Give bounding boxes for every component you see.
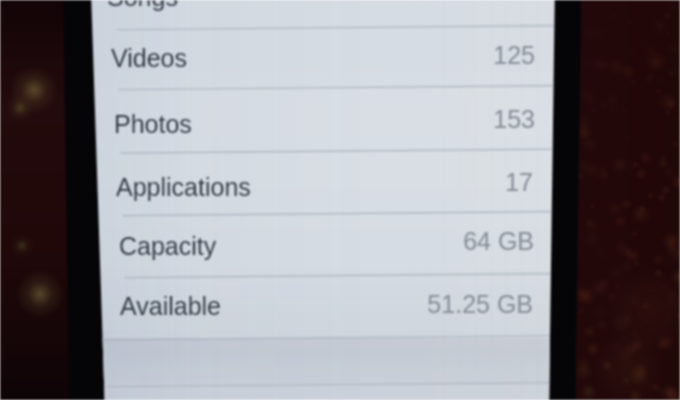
button[interactable]: Capacity (80, 0, 540, 400)
staticText: 64 GB (334, 227, 534, 255)
button[interactable]: Songs (71, 0, 531, 400)
staticText: Capacity (119, 232, 217, 260)
staticText: 17 (333, 168, 533, 196)
staticText: Songs (107, 0, 178, 11)
staticText: 153 (335, 105, 535, 133)
button[interactable]: Videos (74, 0, 534, 400)
button[interactable]: Applications (78, 0, 538, 400)
staticText: Videos (111, 44, 187, 72)
button[interactable]: Photos (76, 0, 536, 400)
staticText: Applications (116, 173, 251, 201)
staticText: 51.25 GB (333, 290, 533, 318)
staticText: 125 (335, 41, 535, 69)
staticText: Photos (114, 110, 192, 138)
staticText: Available (120, 292, 222, 320)
button[interactable]: Available (82, 0, 542, 400)
